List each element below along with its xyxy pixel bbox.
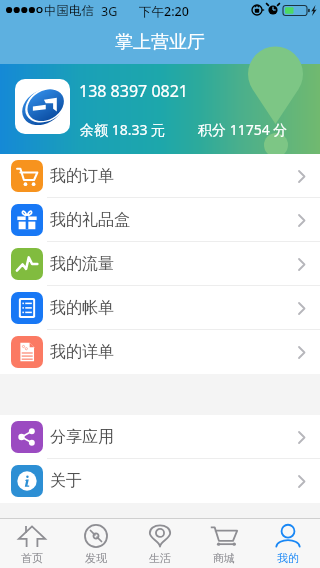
staticText: 发现 bbox=[85, 551, 107, 565]
staticText: 我的 bbox=[277, 551, 299, 565]
staticText: 分享应用 bbox=[50, 427, 114, 447]
staticText: 积分 11754 分 bbox=[198, 120, 288, 139]
staticText: 首页 bbox=[21, 551, 43, 565]
staticText: 我的订单 bbox=[50, 166, 114, 186]
button[interactable]: 我的订单 bbox=[0, 154, 320, 198]
staticText: 中国电信 bbox=[44, 3, 94, 19]
staticText: 掌上营业厅 bbox=[115, 31, 205, 54]
button[interactable]: 我的礼品盒 bbox=[0, 198, 320, 242]
staticText: 下午2:20 bbox=[139, 3, 189, 20]
staticText: 商城 bbox=[213, 551, 235, 565]
staticText: 138 8397 0821 bbox=[79, 80, 188, 102]
button[interactable]: 商城 bbox=[192, 519, 256, 568]
button[interactable]: 我的详单 bbox=[0, 330, 320, 374]
staticText: 关于 bbox=[50, 471, 82, 491]
staticText: 我的帐单 bbox=[50, 298, 114, 318]
staticText: 3G bbox=[101, 3, 118, 20]
staticText: 我的流量 bbox=[50, 254, 114, 274]
button[interactable]: 分享应用 bbox=[0, 415, 320, 459]
staticText: 我的详单 bbox=[50, 342, 114, 362]
button[interactable]: 关于 bbox=[0, 459, 320, 503]
button[interactable]: 我的帐单 bbox=[0, 286, 320, 330]
button[interactable]: 发现 bbox=[64, 519, 128, 568]
button[interactable]: 生活 bbox=[128, 519, 192, 568]
button[interactable]: 我的流量 bbox=[0, 242, 320, 286]
staticText: 余额 18.33 元 bbox=[80, 120, 166, 139]
staticText: 生活 bbox=[149, 551, 171, 565]
button[interactable]: 首页 bbox=[0, 519, 64, 568]
staticText: 我的礼品盒 bbox=[50, 210, 130, 230]
button[interactable]: 我的 bbox=[256, 519, 320, 568]
